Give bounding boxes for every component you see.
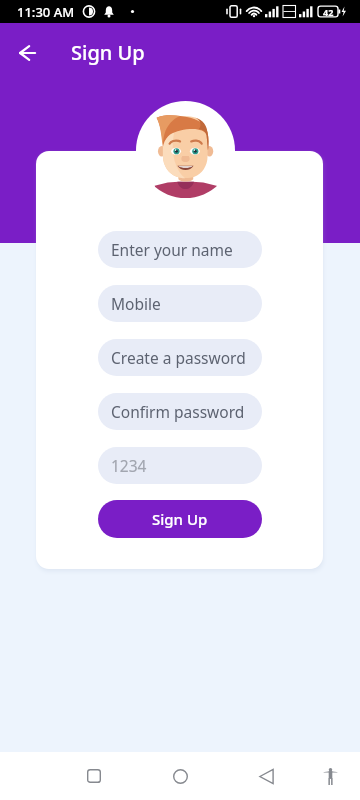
staticText: 1234: [111, 455, 147, 476]
button[interactable]: Accessibility: [308, 752, 352, 800]
button[interactable]: Mobile: [98, 285, 262, 322]
staticText: Create a password: [111, 347, 246, 368]
button[interactable]: Back: [244, 752, 288, 800]
staticText: 42: [323, 6, 334, 18]
button[interactable]: Sign Up: [98, 500, 262, 538]
button[interactable]: Enter your name: [98, 231, 262, 268]
button[interactable]: Confirm password: [98, 393, 262, 430]
staticText: Confirm password: [111, 401, 245, 422]
button[interactable]: Back: [9, 35, 45, 71]
staticText: Mobile: [111, 293, 161, 314]
staticText: Sign Up: [152, 509, 208, 529]
staticText: Sign Up: [71, 39, 145, 66]
button[interactable]: Home: [158, 752, 202, 800]
button[interactable]: 1234: [98, 447, 262, 484]
button[interactable]: Create a password: [98, 339, 262, 376]
staticText: 11:30 AM: [17, 3, 75, 21]
button[interactable]: Recent apps: [72, 752, 116, 800]
staticText: Enter your name: [111, 239, 233, 260]
